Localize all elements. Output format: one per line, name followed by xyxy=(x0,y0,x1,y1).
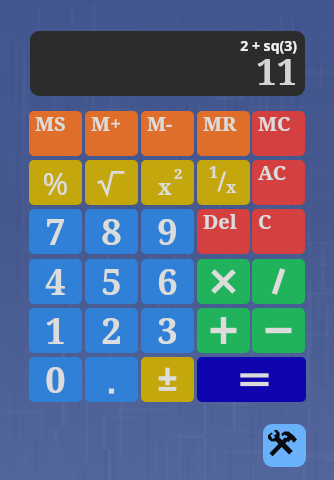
staticText: 11 xyxy=(30,47,297,96)
staticText: 3 xyxy=(141,308,194,351)
button[interactable]: 7 xyxy=(29,209,82,254)
button[interactable]: AC xyxy=(252,160,305,205)
staticText: C xyxy=(258,209,272,235)
button[interactable]: 1 xyxy=(29,308,82,353)
button[interactable]: 0 xyxy=(29,357,82,402)
staticText: M+ xyxy=(91,111,122,137)
button[interactable]: Divide xyxy=(252,259,305,304)
button[interactable]: Multiply xyxy=(197,259,250,304)
staticText: 9 xyxy=(141,209,194,252)
button[interactable]: MC xyxy=(252,111,305,156)
button[interactable]: Del xyxy=(197,209,250,254)
staticText: 1 xyxy=(29,308,82,351)
button[interactable]: MS xyxy=(29,111,82,156)
button[interactable]: 4 xyxy=(29,259,82,304)
staticText: 4 xyxy=(29,259,82,302)
button[interactable]: Plus minus xyxy=(141,357,194,402)
staticText: 2 xyxy=(85,308,138,351)
button[interactable]: 9 xyxy=(141,209,194,254)
button[interactable]: % xyxy=(29,160,82,205)
staticText: x xyxy=(158,173,172,202)
button[interactable]: Square root xyxy=(85,160,138,205)
button[interactable]: Settings xyxy=(263,424,306,467)
button[interactable]: Decimal point xyxy=(85,357,138,402)
button[interactable]: 3 xyxy=(141,308,194,353)
staticText: Del xyxy=(203,209,237,235)
button[interactable]: x xyxy=(141,160,194,205)
staticText: x xyxy=(226,176,237,198)
staticText: 0 xyxy=(29,357,82,400)
staticText: 1 xyxy=(209,161,219,183)
button[interactable]: 5 xyxy=(85,259,138,304)
staticText: 6 xyxy=(141,259,194,302)
staticText: M- xyxy=(147,111,173,137)
staticText: % xyxy=(29,162,82,204)
staticText: AC xyxy=(258,160,287,186)
staticText: 2 xyxy=(174,163,183,183)
staticText: 5 xyxy=(85,259,138,302)
staticText: MR xyxy=(203,111,237,137)
button[interactable]: 1 xyxy=(197,160,250,205)
staticText: 7 xyxy=(29,209,82,252)
button[interactable]: 8 xyxy=(85,209,138,254)
button[interactable]: 2 xyxy=(85,308,138,353)
staticText: 2 + sq(3) xyxy=(30,36,297,55)
button[interactable]: Equals xyxy=(197,357,306,402)
button[interactable]: 6 xyxy=(141,259,194,304)
button[interactable]: Plus xyxy=(197,308,250,353)
staticText: MC xyxy=(258,111,291,137)
button[interactable]: C xyxy=(252,209,305,254)
staticText: MS xyxy=(35,111,66,137)
button[interactable]: Minus xyxy=(252,308,305,353)
button[interactable]: M- xyxy=(141,111,194,156)
staticText: 8 xyxy=(85,209,138,252)
button[interactable]: M+ xyxy=(85,111,138,156)
button[interactable]: MR xyxy=(197,111,250,156)
